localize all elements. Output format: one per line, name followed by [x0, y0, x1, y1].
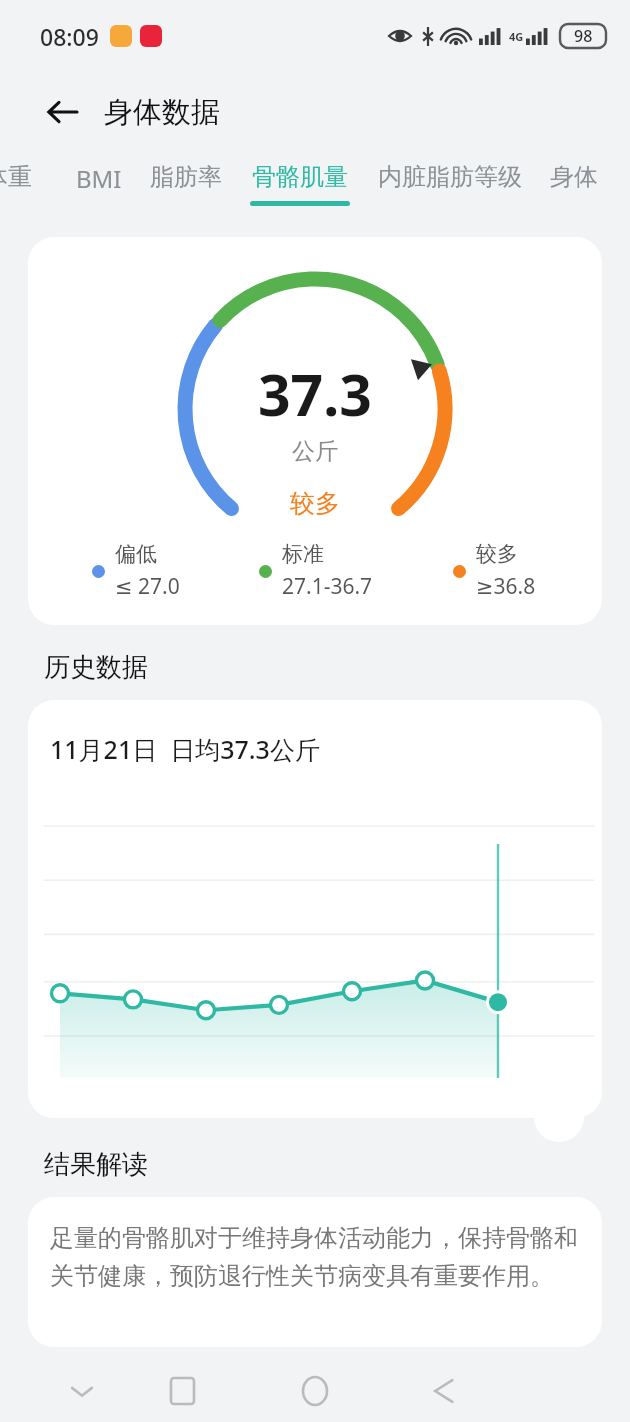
staticText: 身体: [550, 162, 598, 192]
staticText: 体重: [0, 162, 32, 192]
staticText: 较多: [476, 541, 518, 567]
button[interactable]: Hide keyboard: [58, 1367, 106, 1415]
button[interactable]: 体重: [0, 152, 32, 201]
staticText: 37.3: [258, 355, 372, 433]
staticText: BMI: [76, 162, 122, 195]
staticText: 足量的骨骼肌对于维持身体活动能力，保持骨骼和关节健康，预防退行性关节病变具有重要…: [50, 1223, 584, 1292]
staticText: 27.1-36.7: [282, 572, 373, 601]
staticText: 身体数据: [104, 94, 220, 131]
staticText: 标准: [282, 541, 324, 567]
staticText: 公斤: [292, 437, 338, 466]
staticText: 98: [574, 25, 593, 47]
staticText: 脂肪率: [150, 162, 222, 192]
button[interactable]: 脂肪率: [150, 152, 222, 201]
staticText: 骨骼肌量: [252, 162, 348, 192]
staticText: 结果解读: [44, 1148, 148, 1181]
button[interactable]: 身体: [550, 152, 598, 201]
staticText: 内脏脂肪等级: [378, 162, 522, 192]
button[interactable]: BMI: [76, 152, 122, 204]
staticText: 4G: [509, 29, 524, 44]
staticText: 较多: [290, 488, 340, 519]
button[interactable]: 骨骼肌量: [250, 152, 350, 206]
staticText: 偏低: [115, 541, 157, 567]
staticText: 历史数据: [44, 651, 148, 684]
staticText: ≤ 27.0: [115, 572, 180, 601]
staticText: 08:09: [40, 21, 99, 52]
button[interactable]: Back: [420, 1367, 468, 1415]
button[interactable]: Back: [36, 86, 88, 138]
button[interactable]: 内脏脂肪等级: [378, 152, 522, 201]
staticText: ≥36.8: [476, 572, 536, 601]
button[interactable]: Recents: [158, 1367, 206, 1415]
staticText: 11月21日 日均37.3公斤: [50, 732, 320, 766]
button[interactable]: Home: [291, 1367, 339, 1415]
